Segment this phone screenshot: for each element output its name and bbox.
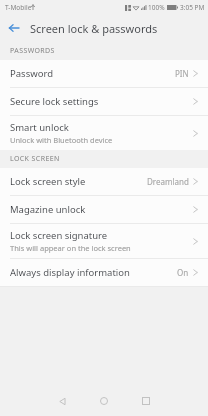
button[interactable]: Back (47, 386, 77, 416)
button[interactable]: Always display information (0, 259, 208, 286)
staticText: Magazine unlock (10, 203, 86, 216)
staticText: Screen lock & passwords (30, 21, 158, 36)
button[interactable]: Password (0, 60, 208, 88)
button[interactable]: Lock screen style (0, 168, 208, 196)
staticText: Always display information (10, 266, 130, 279)
staticText: This will appear on the lock screen (10, 243, 131, 253)
staticText: 100% (148, 3, 165, 12)
button[interactable]: Smart unlock (0, 116, 208, 150)
staticText: PIN (175, 68, 189, 79)
staticText: LOCK SCREEN (10, 154, 60, 164)
staticText: T-Mobile (5, 3, 32, 12)
staticText: Password (10, 67, 53, 80)
button[interactable]: Lock screen signature (0, 224, 208, 259)
staticText: Unlock with Bluetooth device (10, 135, 113, 145)
staticText: 3:05 PM (180, 3, 205, 12)
staticText: Lock screen style (10, 175, 86, 188)
button[interactable]: Recent apps (131, 386, 161, 416)
button[interactable]: Back (0, 14, 28, 42)
staticText: On (177, 267, 189, 278)
button[interactable]: Secure lock settings (0, 88, 208, 116)
staticText: Secure lock settings (10, 95, 99, 108)
button[interactable]: Magazine unlock (0, 196, 208, 224)
staticText: Dreamland (147, 176, 189, 187)
button[interactable]: Home (89, 386, 119, 416)
staticText: Smart unlock (10, 121, 69, 134)
staticText: PASSWORDS (10, 46, 55, 56)
staticText: Lock screen signature (10, 229, 108, 242)
